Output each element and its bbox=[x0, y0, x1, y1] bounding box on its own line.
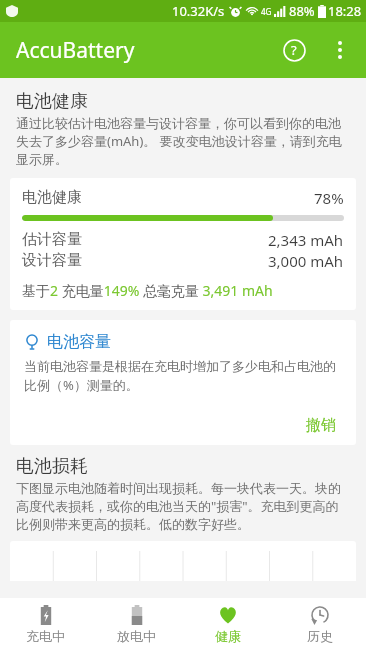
staticText: 当前电池容量是根据在充电时增加了多少电和占电池的比例（%）测量的。 bbox=[24, 358, 342, 394]
staticText: 估计容量 bbox=[22, 230, 82, 249]
button[interactable]: Help bbox=[270, 26, 318, 74]
staticText: 10.32K/s bbox=[172, 2, 225, 20]
staticText: 撤销 bbox=[306, 416, 336, 435]
staticText: 2,343 mAh bbox=[268, 230, 344, 250]
staticText: 88% bbox=[289, 2, 315, 20]
staticText: 放电中 bbox=[117, 628, 156, 644]
staticText: 历史 bbox=[307, 628, 333, 644]
staticText: 健康 bbox=[215, 628, 241, 644]
staticText: 电池损耗 bbox=[16, 455, 88, 478]
button[interactable]: 放电中 bbox=[91, 598, 182, 650]
staticText: 通过比较估计电池容量与设计容量，你可以看到你的电池失去了多少容量(mAh)。 要… bbox=[16, 115, 350, 168]
staticText: ? bbox=[291, 41, 297, 59]
staticText: 电池健康 bbox=[22, 188, 82, 207]
button[interactable]: 充电中 bbox=[0, 598, 91, 650]
button[interactable]: 电池容量 bbox=[10, 320, 356, 445]
staticText: 基于2 充电量149% 总毫克量 3,491 mAh bbox=[22, 281, 273, 300]
staticText: AccuBattery bbox=[16, 36, 135, 65]
staticText: 充电中 bbox=[26, 628, 65, 644]
staticText: 下图显示电池随着时间出现损耗。每一块代表一天。块的高度代表损耗，或你的电池当天的… bbox=[16, 480, 350, 533]
button[interactable]: 健康 bbox=[182, 598, 274, 650]
staticText: 电池容量 bbox=[47, 332, 111, 352]
staticText: 4G bbox=[261, 6, 272, 17]
staticText: 设计容量 bbox=[22, 251, 82, 270]
button[interactable]: More options bbox=[318, 28, 362, 72]
button[interactable]: 撤销 bbox=[300, 414, 342, 437]
staticText: 电池健康 bbox=[16, 90, 88, 113]
button[interactable]: 电池健康 bbox=[10, 178, 356, 310]
staticText: 18:28 bbox=[328, 2, 362, 20]
staticText: 3,000 mAh bbox=[268, 251, 344, 271]
button[interactable]: 历史 bbox=[274, 598, 366, 650]
staticText: 78% bbox=[314, 188, 344, 208]
